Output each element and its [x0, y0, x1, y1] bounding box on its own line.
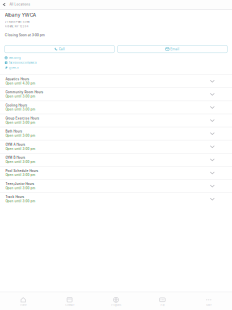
staticText: Programs [111, 304, 121, 307]
staticText: Teen/Junior Hours [6, 182, 35, 186]
staticText: Open until 3:00 pm [6, 173, 36, 177]
staticText: 21 North Pearl Street [5, 20, 30, 23]
staticText: Closing Soon at 3:00 pm [5, 33, 45, 37]
staticText: Call [59, 47, 65, 51]
staticText: Aquatics Hours [6, 77, 30, 81]
button[interactable]: Email [118, 45, 227, 53]
staticText: ywca.org [9, 56, 21, 59]
staticText: More [206, 304, 211, 307]
staticText: Pool Schedule Hours [6, 169, 39, 173]
staticText: Track Hours [6, 195, 25, 199]
staticText: @ywca [9, 66, 18, 69]
button[interactable]: Programs [93, 292, 139, 310]
button[interactable]: All Locations [0, 0, 35, 9]
staticText: Home [20, 304, 26, 307]
staticText: Albany, NY 12204 [5, 25, 29, 28]
staticText: facebook.com/ywca [9, 61, 36, 64]
staticText: Albany YWCA [5, 12, 36, 18]
button[interactable]: Aquatics Hours [0, 74, 232, 87]
button[interactable]: Pay [139, 292, 186, 310]
staticText: Open until 3:00 pm [6, 160, 36, 164]
staticText: Open until 4:30 pm [6, 81, 36, 85]
button[interactable]: Community Room Hours [0, 87, 232, 101]
button[interactable]: Cooling Hours [0, 101, 232, 114]
staticText: GYM B Hours [6, 156, 26, 159]
staticText: Open until 3:00 pm [6, 186, 36, 190]
staticText: Email [170, 47, 179, 51]
staticText: Pay [160, 304, 164, 307]
button[interactable]: GYM A Hours [0, 140, 232, 153]
button[interactable]: facebook.com/ywca [5, 61, 227, 64]
button[interactable]: Track Hours [0, 192, 232, 205]
staticText: Schedule [65, 304, 74, 307]
button[interactable]: Call [5, 45, 114, 53]
button[interactable]: Teen/Junior Hours [0, 179, 232, 192]
staticText: Community Room Hours [6, 90, 44, 94]
staticText: All Locations [10, 3, 31, 6]
button[interactable]: GYM B Hours [0, 153, 232, 166]
staticText: Bath Hours [6, 130, 23, 133]
staticText: Open until 3:00 pm [6, 121, 36, 124]
button[interactable]: Pool Schedule Hours [0, 166, 232, 179]
staticText: Open until 3:00 pm [6, 95, 36, 98]
button[interactable]: Schedule [46, 292, 93, 310]
staticText: Open until 3:00 pm [6, 108, 36, 111]
staticText: Open until 3:00 pm [6, 134, 36, 137]
button[interactable]: Group Exercise Hours [0, 114, 232, 127]
button[interactable]: Bath Hours [0, 127, 232, 140]
staticText: Group Exercise Hours [6, 117, 40, 120]
button[interactable]: @ywca [5, 66, 227, 69]
staticText: Cooling Hours [6, 103, 28, 107]
staticText: Open until 3:00 pm [6, 199, 36, 203]
button[interactable]: Home [0, 292, 46, 310]
staticText: Open until 3:00 pm [6, 147, 36, 151]
button[interactable]: ywca.org [5, 56, 227, 59]
staticText: GYM A Hours [6, 143, 26, 146]
